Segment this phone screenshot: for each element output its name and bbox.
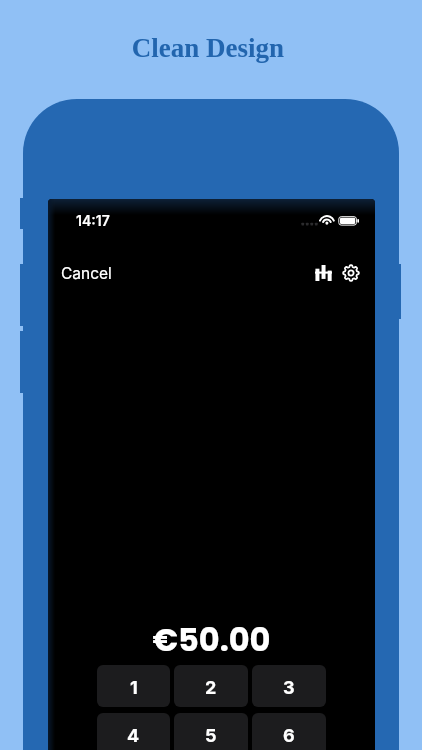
button[interactable]: 3: [252, 665, 326, 707]
staticText: 6: [283, 725, 295, 747]
button[interactable]: Settings: [337, 259, 367, 287]
staticText: €50.00: [48, 617, 375, 662]
staticText: Cancel: [61, 264, 112, 283]
staticText: Clean Design: [0, 33, 419, 63]
staticText: 3: [283, 677, 295, 699]
button[interactable]: 2: [174, 665, 248, 707]
staticText: 14:17: [76, 212, 110, 229]
staticText: 1: [130, 677, 138, 699]
button[interactable]: 4: [97, 713, 170, 750]
button[interactable]: 1: [97, 665, 170, 707]
staticText: 4: [127, 725, 140, 747]
button[interactable]: Statistics: [310, 260, 337, 286]
staticText: 5: [205, 725, 217, 747]
button[interactable]: 5: [174, 713, 248, 750]
button[interactable]: 6: [252, 713, 326, 750]
staticText: 2: [205, 677, 217, 699]
button[interactable]: Cancel: [56, 257, 117, 290]
